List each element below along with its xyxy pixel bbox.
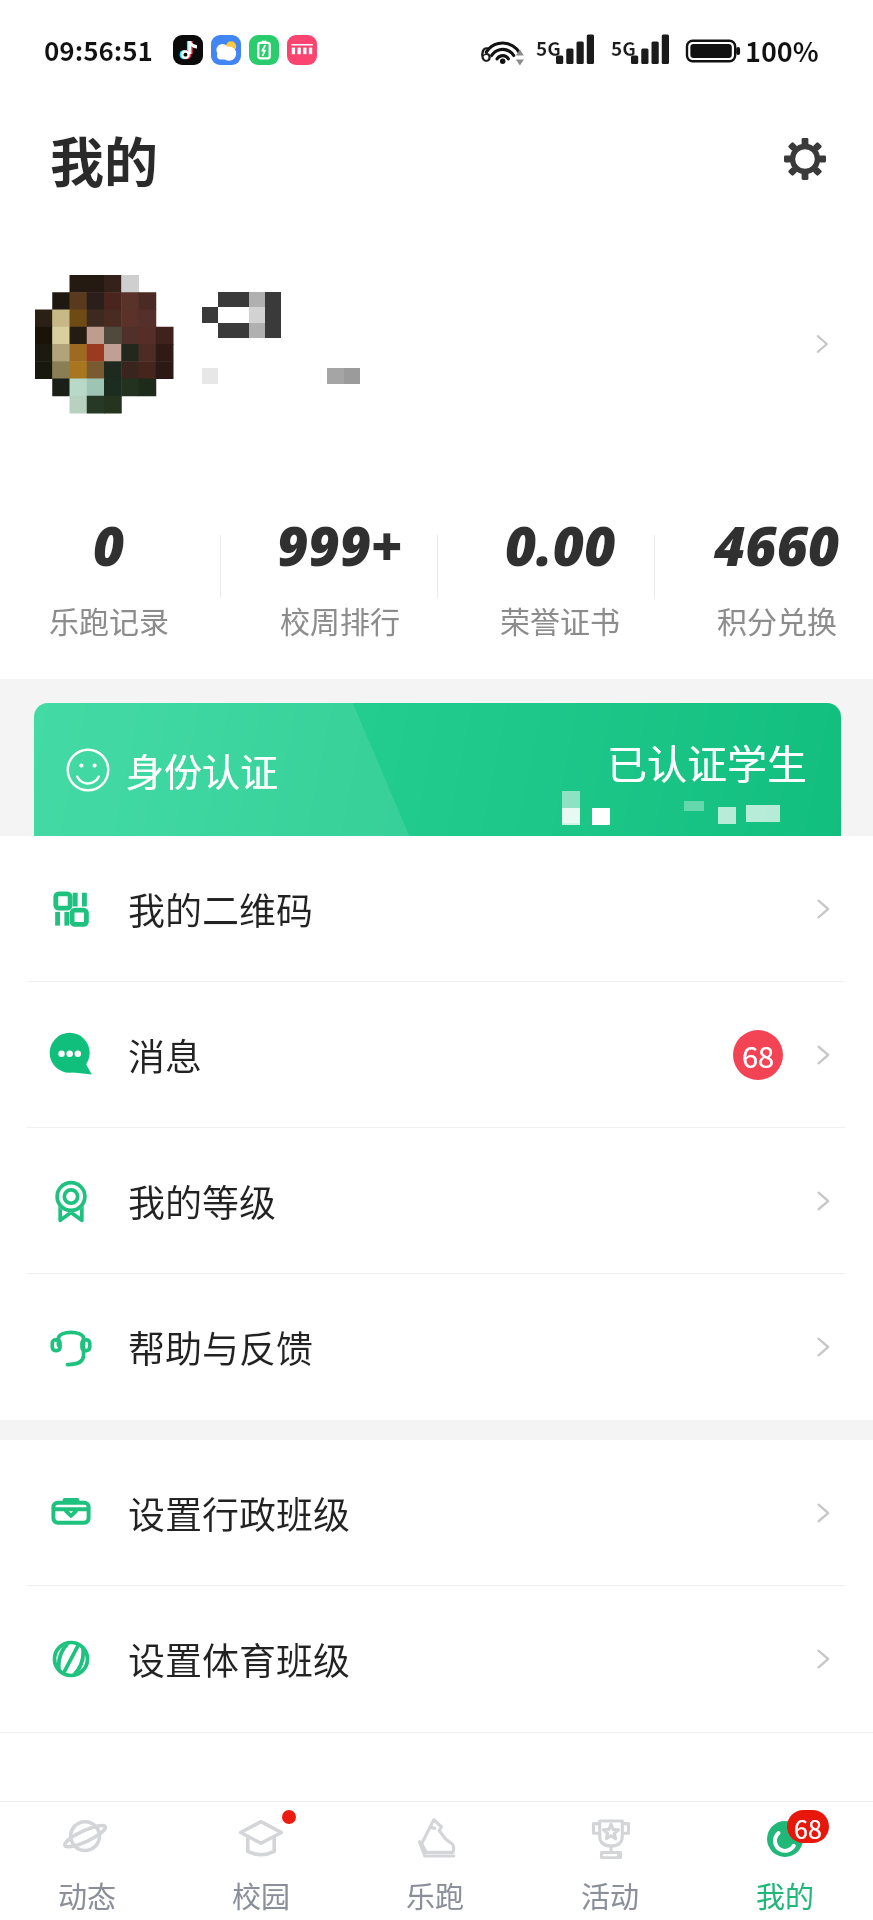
- staticText: 校园: [232, 1874, 291, 1916]
- staticText: 我的二维码: [128, 882, 313, 936]
- staticText: 消息: [128, 1028, 202, 1082]
- staticText: 积分兑换: [717, 598, 837, 641]
- button[interactable]: 我的二维码: [0, 836, 873, 982]
- staticText: 荣誉证书: [500, 598, 620, 641]
- button[interactable]: 身份认证: [34, 703, 841, 836]
- staticText: 乐跑: [406, 1874, 465, 1916]
- staticText: 我的: [50, 120, 158, 198]
- button[interactable]: 0: [19, 470, 199, 679]
- button[interactable]: 帮助与反馈: [0, 1274, 873, 1420]
- button[interactable]: 999+: [250, 470, 430, 679]
- staticText: 身份认证: [126, 742, 279, 797]
- staticText: 乐跑记录: [49, 598, 169, 641]
- staticText: 已认证学生: [607, 733, 807, 791]
- staticText: 999+: [277, 508, 403, 582]
- button[interactable]: Settings: [773, 127, 837, 191]
- staticText: 活动: [581, 1874, 640, 1916]
- staticText: 100%: [745, 31, 819, 70]
- button[interactable]: 活动: [523, 1810, 698, 1920]
- staticText: 我的等级: [128, 1174, 276, 1228]
- staticText: 68: [742, 1034, 775, 1076]
- button[interactable]: [0, 218, 873, 470]
- staticText: 设置体育班级: [128, 1632, 350, 1686]
- staticText: 4660: [714, 508, 840, 582]
- button[interactable]: 0.00: [470, 470, 650, 679]
- staticText: 我的: [756, 1874, 815, 1916]
- staticText: 校周排行: [280, 598, 400, 641]
- staticText: 设置行政班级: [128, 1486, 350, 1540]
- button[interactable]: 消息: [0, 982, 873, 1128]
- staticText: 0.00: [505, 508, 616, 582]
- staticText: 68: [794, 1810, 822, 1843]
- staticText: 09:56:51: [44, 31, 153, 69]
- button[interactable]: 设置行政班级: [0, 1440, 873, 1586]
- button[interactable]: 校园: [174, 1810, 348, 1920]
- button[interactable]: 4660: [687, 470, 867, 679]
- staticText: 帮助与反馈: [128, 1320, 313, 1374]
- button[interactable]: 我的等级: [0, 1128, 873, 1274]
- staticText: 6: [480, 39, 492, 68]
- button[interactable]: 设置体育班级: [0, 1586, 873, 1732]
- staticText: 0: [93, 508, 125, 582]
- button[interactable]: 68: [698, 1810, 873, 1920]
- button[interactable]: 动态: [0, 1810, 174, 1920]
- staticText: 5G: [536, 34, 561, 62]
- button[interactable]: 乐跑: [348, 1810, 523, 1920]
- staticText: 5G: [611, 34, 636, 62]
- staticText: 动态: [58, 1874, 117, 1916]
